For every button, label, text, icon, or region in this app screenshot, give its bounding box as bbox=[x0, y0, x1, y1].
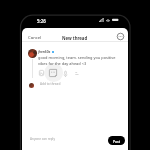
staticText: New thread bbox=[62, 35, 88, 41]
button[interactable]: Add GIF bbox=[49, 69, 57, 77]
staticText: Post bbox=[113, 139, 121, 143]
button[interactable]: Cancel bbox=[26, 32, 44, 42]
staticText: Cancel bbox=[28, 34, 42, 40]
button[interactable]: Anyone can reply bbox=[29, 136, 56, 142]
staticText: vibes for the day ahead <3 bbox=[38, 61, 87, 66]
staticText: 5:26 bbox=[37, 18, 46, 24]
button[interactable]: More options bbox=[116, 32, 125, 41]
button[interactable]: Attach image bbox=[39, 70, 44, 76]
staticText: jhen60x bbox=[38, 50, 51, 54]
button[interactable]: Record voice bbox=[64, 71, 67, 77]
staticText: Add to thread bbox=[40, 82, 61, 86]
button[interactable]: Add poll bbox=[75, 71, 79, 76]
button[interactable]: Post bbox=[108, 136, 125, 145]
button[interactable]: Add to thread bbox=[39, 81, 62, 87]
staticText: good morning, team. sending you positive bbox=[38, 55, 116, 60]
staticText: Anyone can reply bbox=[30, 137, 55, 141]
